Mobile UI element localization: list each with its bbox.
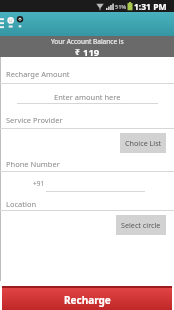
staticText: Recharge Amount bbox=[6, 69, 70, 79]
staticText: 1:31 PM bbox=[134, 1, 167, 13]
button[interactable]: Recharge bbox=[2, 286, 172, 310]
staticText: Recharge bbox=[64, 293, 111, 307]
staticText: Your Account Balance is bbox=[51, 37, 124, 46]
staticText: 119 bbox=[83, 46, 100, 57]
staticText: Enter amount here bbox=[54, 92, 121, 102]
button[interactable]: Select circle bbox=[116, 215, 166, 235]
button[interactable]: Menu bbox=[0, 18, 4, 28]
staticText: ₹ bbox=[75, 46, 80, 57]
staticText: 51% bbox=[115, 3, 127, 10]
staticText: Phone Number bbox=[6, 159, 60, 169]
staticText: Select circle bbox=[121, 220, 161, 230]
staticText: Service Provider bbox=[6, 115, 63, 125]
button[interactable]: Messages bbox=[7, 14, 15, 28]
button[interactable]: Settings bbox=[16, 13, 24, 27]
staticText: Location bbox=[6, 199, 37, 209]
staticText: +91 bbox=[33, 179, 45, 188]
staticText: Choice List bbox=[125, 138, 162, 148]
button[interactable]: Choice List bbox=[120, 133, 166, 153]
